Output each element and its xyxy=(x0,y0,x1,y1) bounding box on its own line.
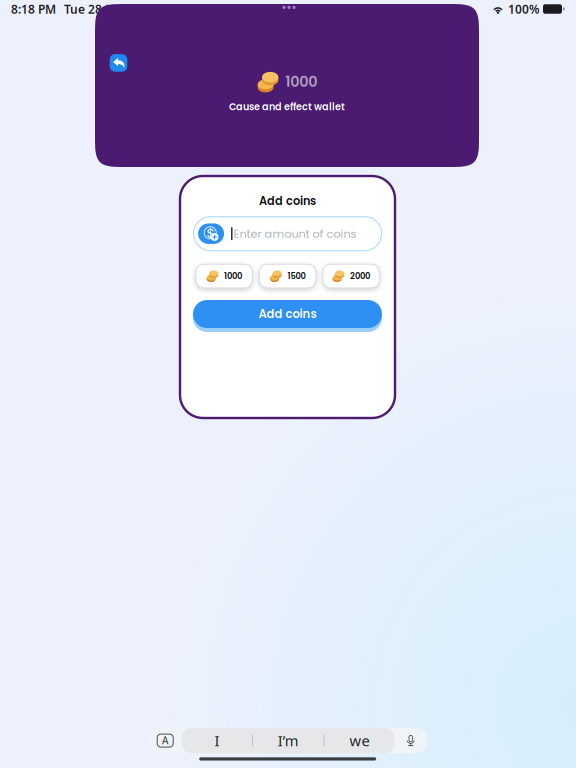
button[interactable]: 1500 xyxy=(259,264,316,288)
staticText: Cause and effect wallet xyxy=(229,100,345,114)
staticText: I’m xyxy=(278,731,299,750)
staticText: 1500 xyxy=(288,270,306,282)
staticText: 1000 xyxy=(285,72,317,92)
button[interactable]: Dictate xyxy=(395,728,427,753)
button[interactable]: we xyxy=(324,728,395,753)
button[interactable]: I xyxy=(182,728,252,753)
staticText: we xyxy=(349,731,369,750)
staticText: I xyxy=(214,731,219,750)
staticText: 2000 xyxy=(350,270,370,282)
button[interactable]: Add coins xyxy=(193,298,382,330)
button[interactable]: 2000 xyxy=(323,264,379,288)
staticText: 100% xyxy=(508,1,540,17)
staticText: A xyxy=(162,735,169,747)
staticText: Add coins xyxy=(258,306,316,322)
staticText: Tue 28 May xyxy=(64,1,130,17)
button[interactable]: Keyboard xyxy=(149,728,182,753)
staticText: 8:18 PM xyxy=(11,1,56,17)
staticText: Add coins xyxy=(259,193,316,209)
staticText: 1000 xyxy=(224,270,242,282)
staticText: Enter amount of coins xyxy=(233,226,356,242)
button[interactable]: Back xyxy=(110,54,127,72)
button[interactable]: 1000 xyxy=(196,264,252,288)
staticText: $ xyxy=(206,226,214,240)
button[interactable]: I’m xyxy=(253,728,323,753)
